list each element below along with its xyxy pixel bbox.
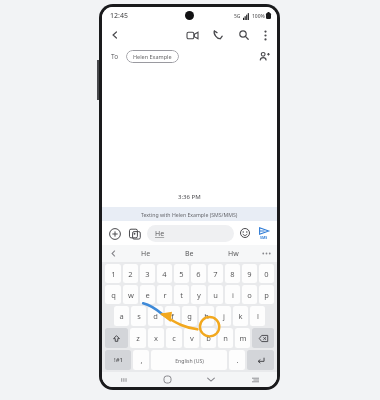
staticText: b: [206, 333, 211, 343]
button[interactable]: Keyboard settings: [233, 372, 277, 387]
staticText: SMS: [260, 235, 268, 240]
button[interactable]: Enter: [247, 350, 274, 370]
button[interactable]: 9: [242, 264, 257, 283]
button[interactable]: Hide keyboard: [189, 372, 233, 387]
button[interactable]: q: [105, 285, 121, 304]
staticText: d: [153, 311, 158, 321]
button[interactable]: i: [225, 285, 240, 304]
staticText: Helen Example: [133, 53, 172, 60]
button[interactable]: z: [130, 328, 146, 348]
button[interactable]: Home: [145, 372, 189, 387]
staticText: 8: [230, 269, 235, 279]
staticText: v: [190, 333, 194, 343]
button[interactable]: k: [233, 306, 248, 326]
button[interactable]: Search: [234, 25, 254, 45]
button[interactable]: Call: [208, 25, 228, 45]
staticText: r: [163, 290, 167, 300]
staticText: !#1: [114, 356, 123, 364]
button[interactable]: 5: [174, 264, 189, 283]
staticText: u: [213, 290, 218, 300]
staticText: He: [141, 249, 151, 259]
button[interactable]: e: [140, 285, 155, 304]
staticText: e: [145, 290, 150, 300]
button[interactable]: v: [184, 328, 199, 348]
staticText: y: [197, 290, 201, 300]
staticText: m: [239, 333, 247, 343]
staticText: Be: [185, 249, 194, 259]
button[interactable]: r: [157, 285, 172, 304]
button[interactable]: More options: [256, 26, 274, 44]
button[interactable]: b: [201, 328, 216, 348]
button[interactable]: g: [182, 306, 197, 326]
button[interactable]: .: [229, 350, 245, 370]
staticText: To: [111, 52, 119, 61]
staticText: 6: [196, 269, 201, 279]
button[interactable]: Helen Example: [126, 50, 179, 63]
button[interactable]: 8: [225, 264, 240, 283]
staticText: 9: [247, 269, 252, 279]
button[interactable]: n: [218, 328, 233, 348]
button[interactable]: Stickers: [126, 225, 143, 242]
button[interactable]: Backspace: [252, 328, 274, 348]
button[interactable]: He: [147, 225, 234, 242]
button[interactable]: 3: [140, 264, 155, 283]
button[interactable]: Recents: [102, 372, 145, 387]
staticText: 12:45: [110, 11, 128, 21]
staticText: 100%: [252, 13, 265, 20]
staticText: a: [119, 311, 124, 321]
button[interactable]: c: [166, 328, 182, 348]
button[interactable]: a: [114, 306, 129, 326]
staticText: x: [154, 333, 158, 343]
button[interactable]: 0: [259, 264, 274, 283]
staticText: s: [137, 311, 141, 321]
staticText: 4: [162, 269, 167, 279]
button[interactable]: t: [174, 285, 189, 304]
staticText: h: [204, 311, 209, 321]
staticText: n: [223, 333, 228, 343]
button[interactable]: 2: [123, 264, 138, 283]
button[interactable]: !#1: [105, 350, 131, 370]
button[interactable]: 6: [191, 264, 206, 283]
button[interactable]: p: [259, 285, 274, 304]
button[interactable]: Add attachment: [106, 225, 123, 242]
button[interactable]: d: [148, 306, 163, 326]
button[interactable]: Video call: [182, 25, 202, 45]
button[interactable]: English (US): [151, 350, 227, 370]
button[interactable]: l: [250, 306, 265, 326]
button[interactable]: s: [131, 306, 146, 326]
staticText: He: [155, 229, 165, 239]
staticText: c: [172, 333, 176, 343]
button[interactable]: 7: [208, 264, 223, 283]
staticText: i: [232, 290, 234, 300]
button[interactable]: Back: [106, 26, 124, 44]
button[interactable]: o: [242, 285, 257, 304]
button[interactable]: He: [124, 245, 167, 262]
button[interactable]: w: [123, 285, 138, 304]
button[interactable]: 1: [105, 264, 121, 283]
button[interactable]: Be: [167, 245, 211, 262]
staticText: 5G: [234, 13, 241, 20]
button[interactable]: j: [216, 306, 231, 326]
staticText: ,: [140, 355, 143, 365]
button[interactable]: Send SMS: [255, 224, 273, 242]
button[interactable]: Add recipient: [255, 47, 273, 65]
staticText: 1: [111, 269, 116, 279]
staticText: q: [111, 290, 116, 300]
staticText: z: [136, 333, 140, 343]
button[interactable]: m: [235, 328, 250, 348]
button[interactable]: 4: [157, 264, 172, 283]
staticText: 7: [213, 269, 218, 279]
button[interactable]: Hw: [211, 245, 255, 262]
button[interactable]: h: [199, 306, 214, 326]
staticText: .: [236, 355, 239, 365]
button[interactable]: Shift: [105, 328, 128, 348]
button[interactable]: More suggestions: [255, 245, 277, 262]
button[interactable]: Emoji: [237, 225, 253, 241]
button[interactable]: f: [165, 306, 180, 326]
staticText: g: [187, 311, 192, 321]
button[interactable]: u: [208, 285, 223, 304]
button[interactable]: x: [148, 328, 164, 348]
button[interactable]: ,: [133, 350, 149, 370]
button[interactable]: y: [191, 285, 206, 304]
button[interactable]: Previous suggestions: [102, 245, 124, 262]
